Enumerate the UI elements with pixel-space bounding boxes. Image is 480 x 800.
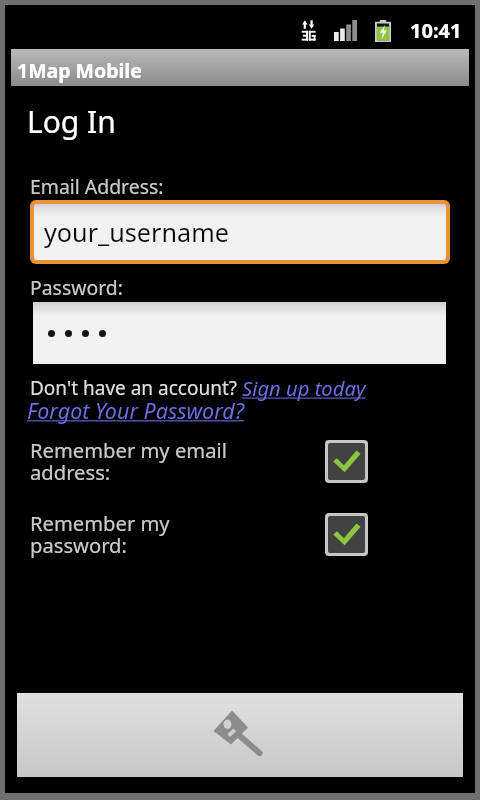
staticText: Remember my email address: xyxy=(30,436,227,485)
staticText: Don't have an account? xyxy=(30,375,238,401)
button[interactable]: Forgot Your Password? xyxy=(27,396,245,425)
staticText: 1Map Mobile xyxy=(17,57,142,84)
button[interactable]: Checkbox xyxy=(325,440,368,483)
button[interactable]: your_username xyxy=(34,204,446,260)
staticText: Password: xyxy=(30,274,123,300)
button[interactable]: Log in xyxy=(17,693,463,777)
staticText: 10:41 xyxy=(410,17,462,44)
staticText: Email Address: xyxy=(30,173,164,199)
staticText: Log In xyxy=(27,101,116,142)
staticText: Remember my password: xyxy=(30,509,170,558)
staticText: your_username xyxy=(44,215,229,249)
button[interactable]: Sign up today xyxy=(242,374,366,402)
button[interactable] xyxy=(33,302,446,364)
button[interactable]: Checkbox xyxy=(325,513,368,556)
